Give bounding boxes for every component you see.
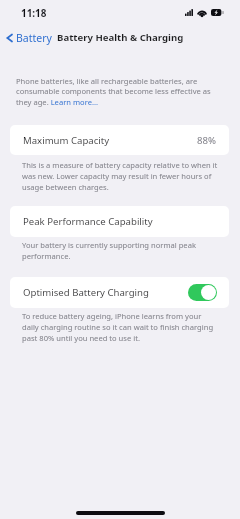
staticText: 88% [197,134,216,147]
other: Wi-Fi [197,8,207,16]
other: Battery charging [211,9,224,16]
button[interactable]: Optimised Battery Charging [10,277,229,308]
button[interactable]: Learn more... [50,98,98,108]
staticText: Battery Health & Charging [57,31,184,44]
staticText: To reduce battery ageing, iPhone learns … [22,311,218,343]
staticText: This is a measure of battery capacity re… [22,160,218,192]
button[interactable]: Optimised Battery Charging, on [188,284,217,301]
staticText: Optimised Battery Charging [23,286,149,299]
staticText: Phone batteries, like all rechargeable b… [16,76,216,108]
staticText: Peak Performance Capability [23,215,153,228]
button[interactable]: Peak Performance Capability [10,206,229,237]
staticText: Battery [16,31,52,45]
staticText: 11:18 [21,6,47,19]
other: Cellular signal [185,9,193,16]
staticText: Your battery is currently supporting nor… [22,240,218,261]
button[interactable]: Battery [5,31,52,45]
button[interactable]: Maximum Capacity [10,125,229,155]
staticText: Maximum Capacity [23,134,110,147]
